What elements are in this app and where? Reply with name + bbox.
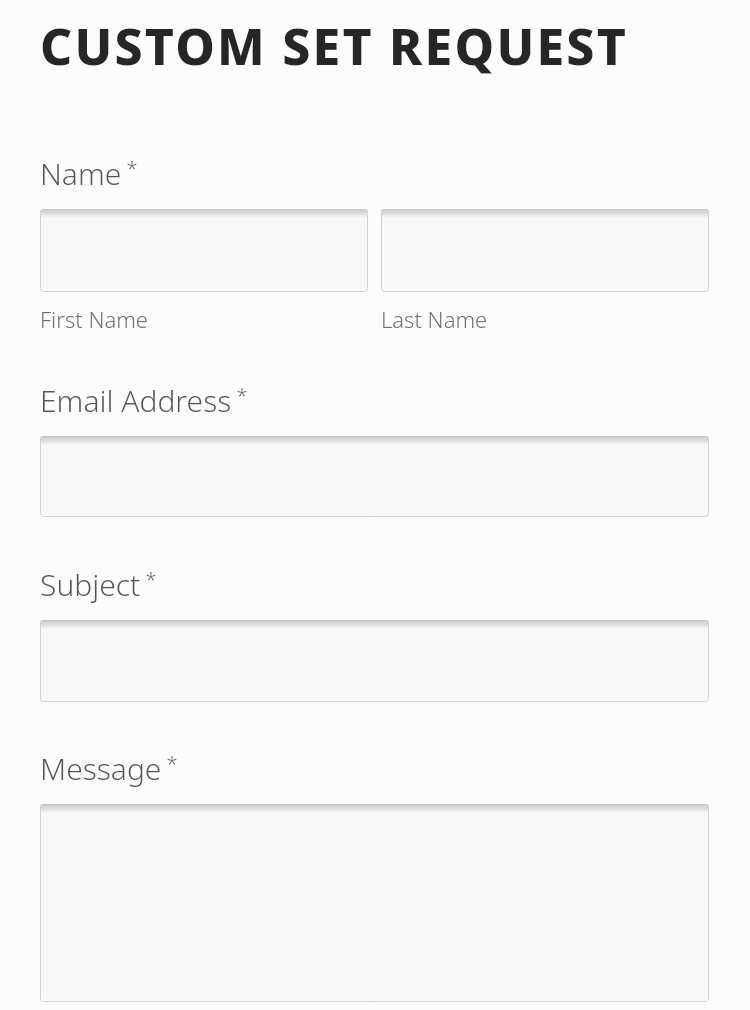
button[interactable]: Last Name <box>381 209 709 292</box>
staticText: CUSTOM SET REQUEST <box>40 12 629 80</box>
staticText: Name * <box>40 153 138 194</box>
button[interactable]: First Name <box>40 209 368 292</box>
staticText: Message * <box>40 748 178 789</box>
staticText: Email Address * <box>40 380 248 421</box>
button[interactable]: Message <box>40 804 709 1002</box>
button[interactable]: Subject <box>40 620 709 702</box>
staticText: Last Name <box>381 304 488 334</box>
button[interactable]: Email Address <box>40 436 709 517</box>
staticText: First Name <box>40 304 148 334</box>
staticText: Subject * <box>40 564 157 605</box>
